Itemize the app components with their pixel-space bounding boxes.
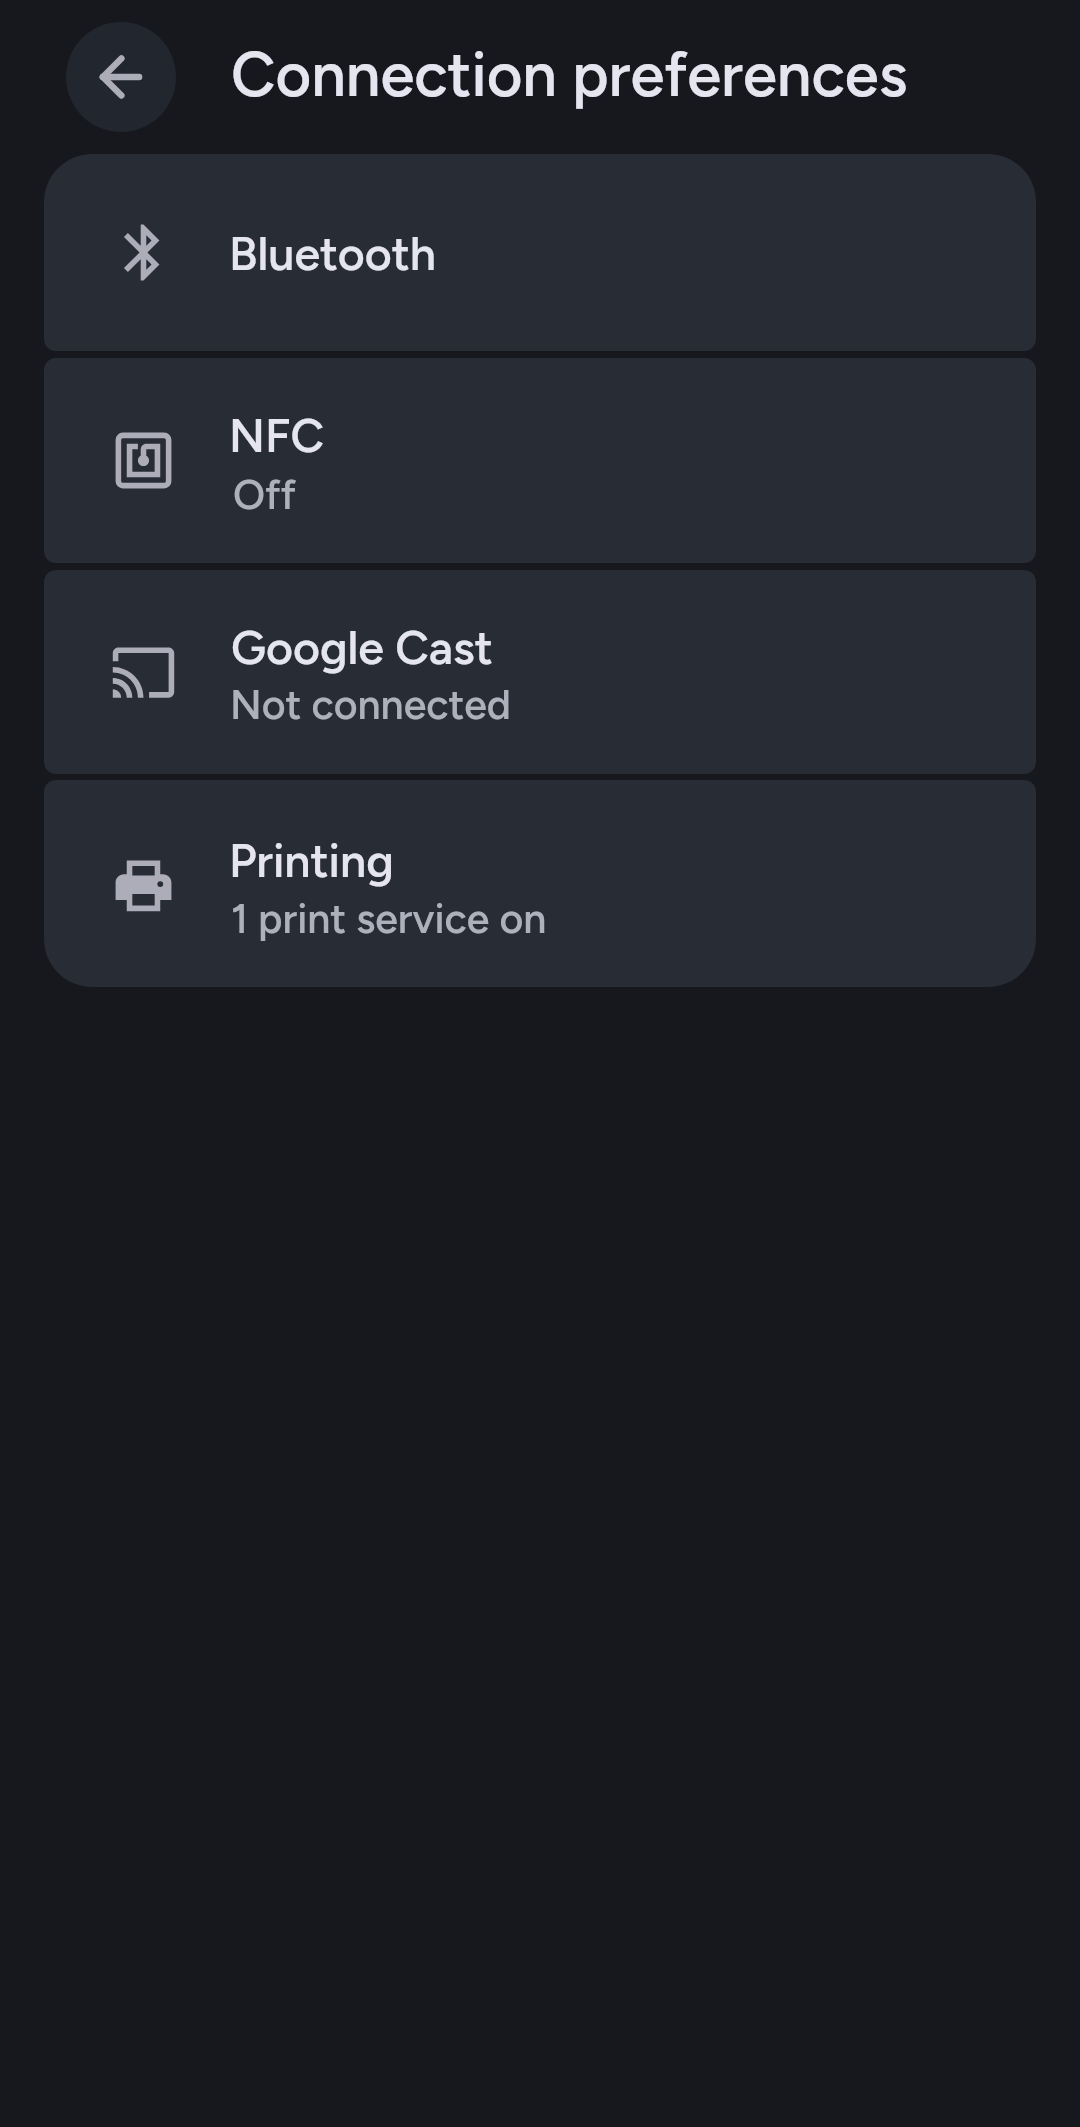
button[interactable]: Bluetooth [44, 154, 1036, 351]
staticText: Off [233, 470, 297, 519]
button[interactable]: Google Cast [44, 570, 1036, 774]
button[interactable]: NFC [44, 358, 1036, 563]
button[interactable]: Printing [44, 780, 1036, 987]
staticText: Not connected [230, 680, 511, 729]
staticText: Connection preferences [231, 38, 908, 112]
staticText: 1 print service on [231, 894, 547, 943]
staticText: Printing [229, 833, 394, 889]
button[interactable]: Navigate up [66, 22, 176, 132]
staticText: Google Cast [231, 620, 493, 676]
staticText: NFC [229, 408, 325, 464]
staticText: Bluetooth [229, 226, 437, 282]
